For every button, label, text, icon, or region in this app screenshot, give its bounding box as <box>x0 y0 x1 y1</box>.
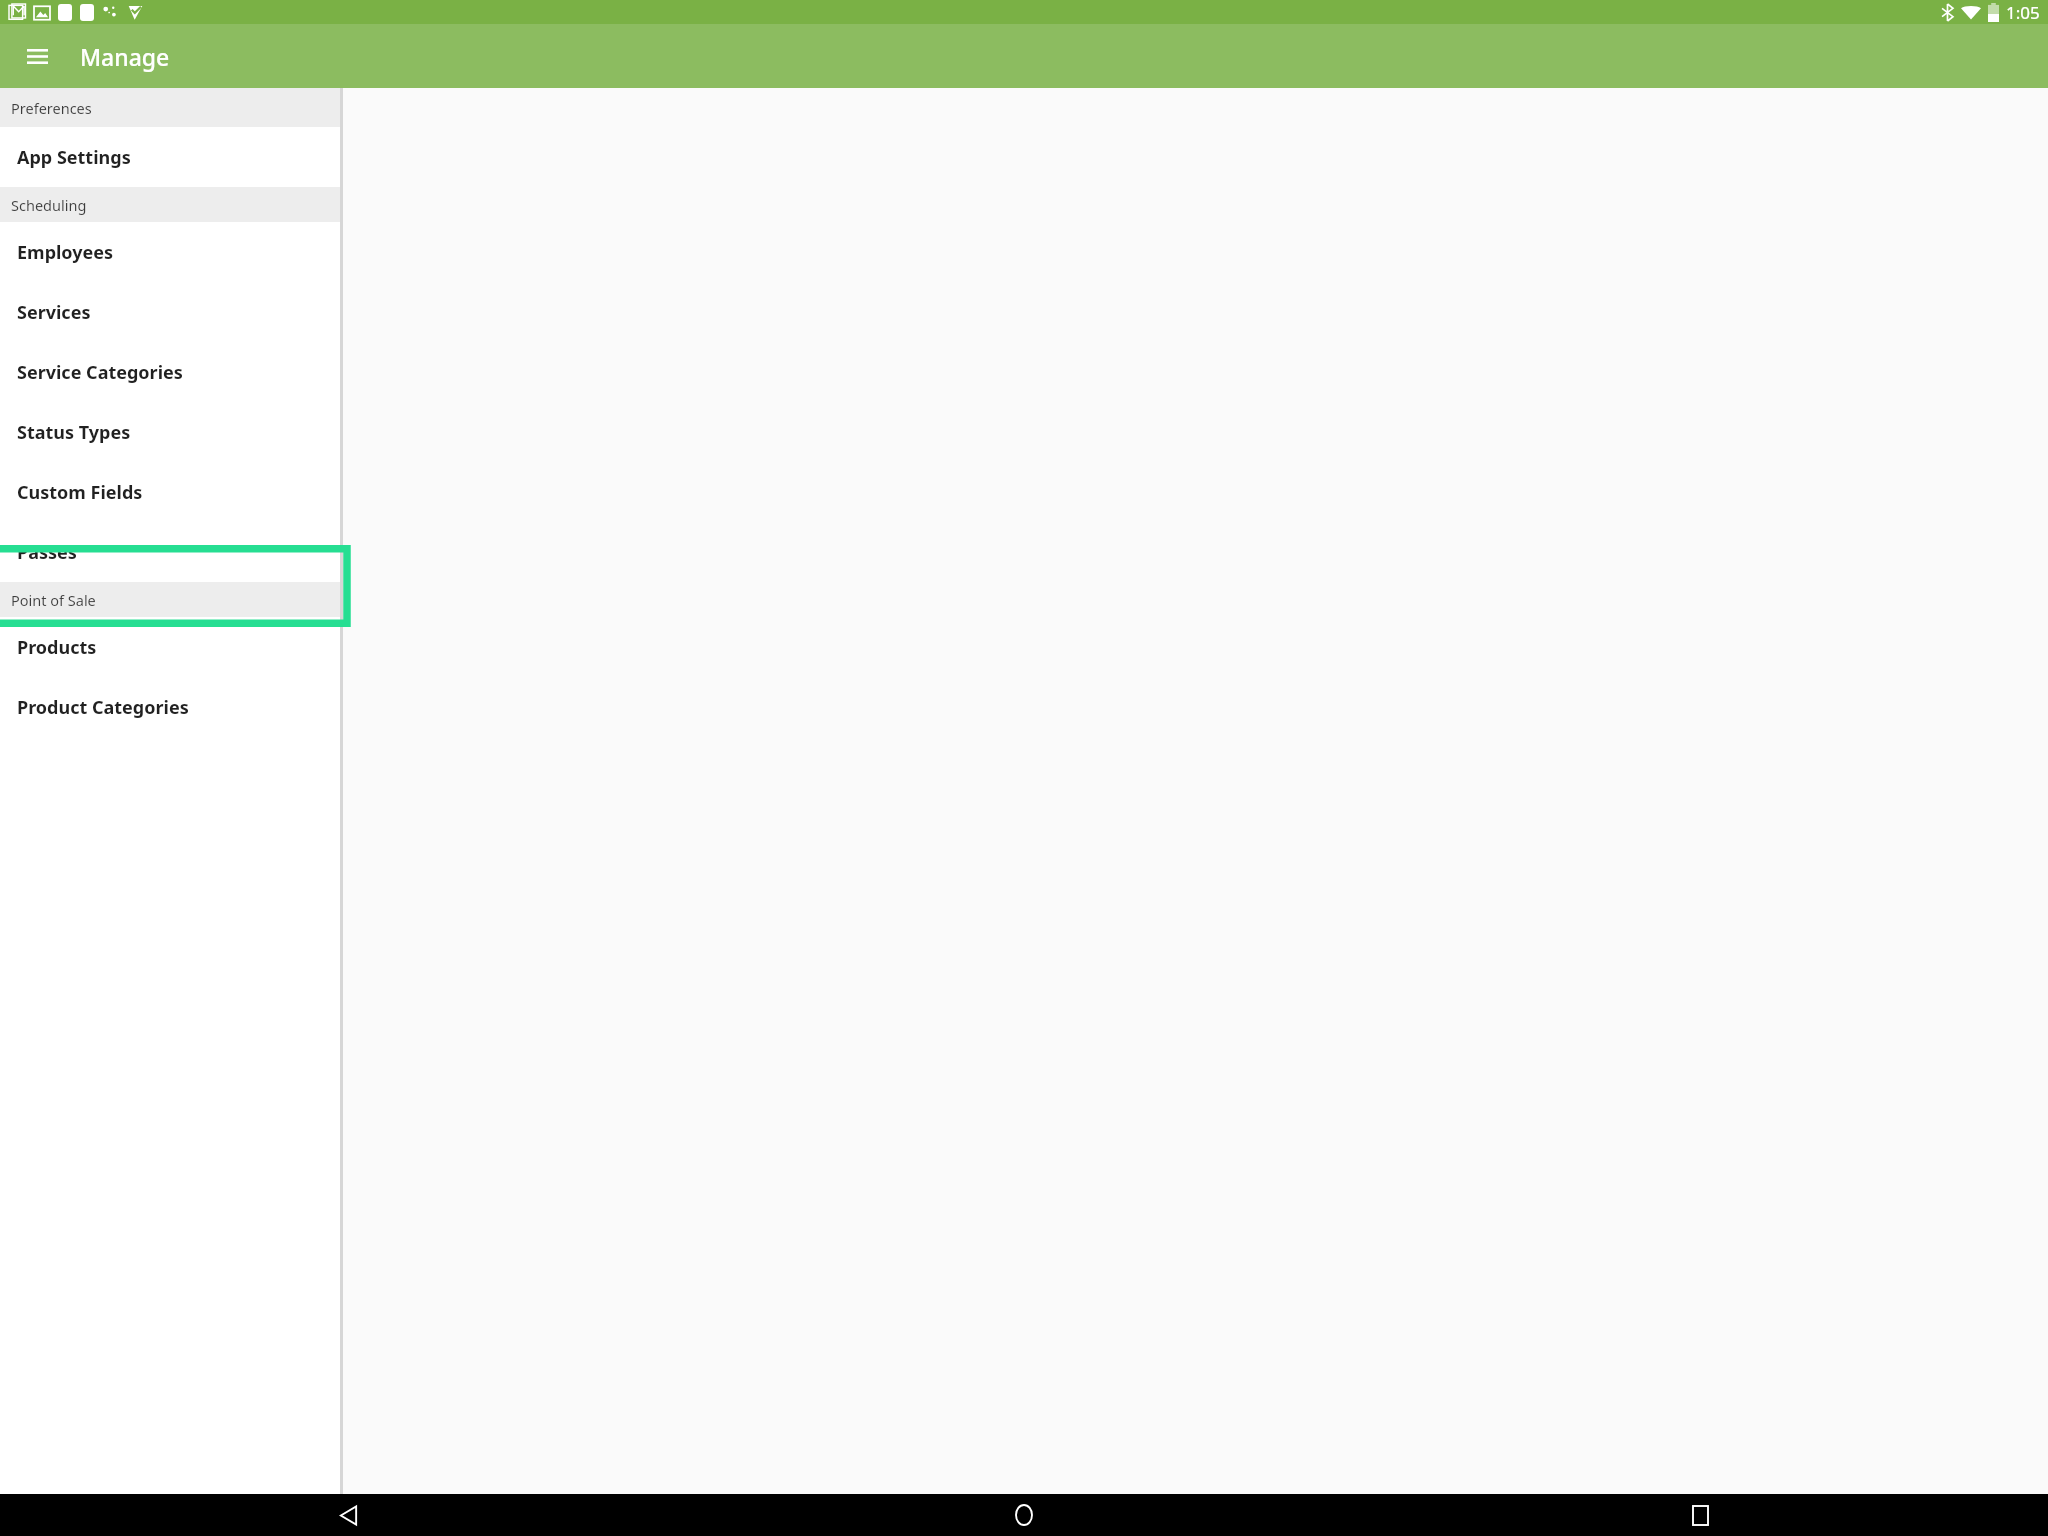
staticText: Services <box>17 300 91 325</box>
button[interactable]: Status Types <box>0 402 340 462</box>
staticText: Preferences <box>11 98 92 118</box>
staticText: App Settings <box>17 145 131 170</box>
button[interactable]: Products <box>0 617 340 677</box>
staticText: Product Categories <box>17 695 189 720</box>
staticText: Manage <box>80 41 170 72</box>
staticText: Service Categories <box>17 360 183 385</box>
staticText: Point of Sale <box>11 590 96 610</box>
button[interactable]: Home <box>1003 1494 1045 1536</box>
button[interactable]: Product Categories <box>0 677 340 737</box>
button[interactable]: Passes <box>0 522 340 582</box>
button[interactable]: Back <box>327 1494 369 1536</box>
button[interactable]: App Settings <box>0 127 340 187</box>
staticText: Products <box>17 635 97 660</box>
staticText: Status Types <box>17 420 131 445</box>
staticText: Custom Fields <box>17 480 143 505</box>
staticText: Scheduling <box>11 195 87 215</box>
button[interactable]: Services <box>0 282 340 342</box>
staticText: 1:05 <box>2006 1 2040 24</box>
button[interactable]: Service Categories <box>0 342 340 402</box>
staticText: Employees <box>17 240 114 265</box>
button[interactable]: Open navigation menu <box>13 32 61 80</box>
button[interactable]: Recent apps <box>1679 1494 1721 1536</box>
button[interactable]: Custom Fields <box>0 462 340 522</box>
staticText: Passes <box>17 540 77 565</box>
button[interactable]: Employees <box>0 222 340 282</box>
